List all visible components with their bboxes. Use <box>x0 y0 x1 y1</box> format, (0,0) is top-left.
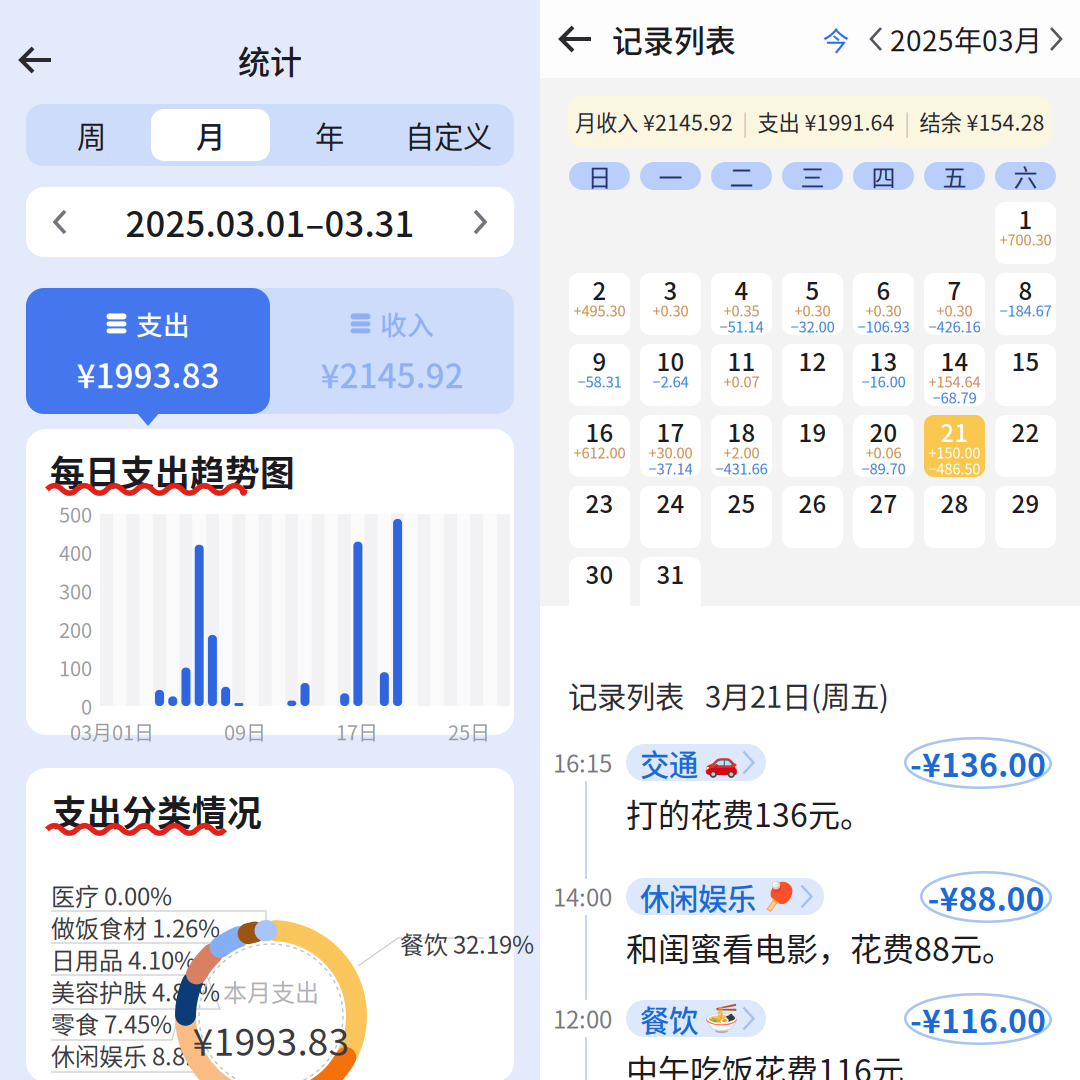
staticText: −184.67 <box>999 299 1051 321</box>
button[interactable]: 12 <box>782 344 843 406</box>
button[interactable]: 16 <box>569 415 630 477</box>
staticText: 300 <box>59 576 92 605</box>
button[interactable]: 收入 <box>270 288 514 414</box>
button[interactable]: 24 <box>640 486 701 548</box>
staticText: 28 <box>940 485 968 520</box>
button[interactable]: 6 <box>853 273 914 335</box>
staticText: 03月01日 <box>70 717 154 746</box>
button[interactable]: 23 <box>569 486 630 548</box>
staticText: −2.64 <box>652 370 688 392</box>
staticText: 记录列表 3月21日(周五) <box>568 674 889 716</box>
button[interactable]: 30 <box>569 557 630 619</box>
staticText: 30 <box>585 556 613 591</box>
staticText: +0.35 <box>723 299 759 321</box>
button[interactable]: 2 <box>569 273 630 335</box>
staticText: −68.79 <box>932 386 976 408</box>
staticText: −16.00 <box>861 370 905 392</box>
button[interactable]: 31 <box>640 557 701 619</box>
button[interactable]: 4 <box>711 273 772 335</box>
staticText: +0.07 <box>723 370 759 392</box>
staticText: +0.30 <box>936 299 972 321</box>
button[interactable]: 自定义 <box>389 109 508 161</box>
button[interactable]: 14:00 <box>540 877 1080 1000</box>
button[interactable]: 返回 <box>540 9 612 69</box>
staticText: 六 <box>1013 159 1037 193</box>
button[interactable]: 3 <box>640 273 701 335</box>
staticText: 记录列表 <box>612 17 736 61</box>
button[interactable]: 返回 <box>0 29 72 91</box>
staticText: -¥136.00 <box>910 740 1046 786</box>
button[interactable]: 28 <box>924 486 985 548</box>
button[interactable]: 1 <box>995 202 1056 264</box>
staticText: 19 <box>798 414 826 449</box>
button[interactable]: 18 <box>711 415 772 477</box>
staticText: 餐饮 32.19% <box>400 926 534 961</box>
button[interactable]: 26 <box>782 486 843 548</box>
button[interactable]: 六 <box>995 162 1056 190</box>
staticText: 18 <box>727 414 755 449</box>
staticText: 零食 7.45% <box>51 1006 172 1040</box>
staticText: 统计 <box>238 37 302 83</box>
button[interactable]: 13 <box>853 344 914 406</box>
staticText: 做饭食材 1.26% <box>51 910 220 944</box>
button[interactable]: 16:15 <box>540 743 1080 879</box>
button[interactable]: 年 <box>270 109 389 161</box>
button[interactable]: 15 <box>995 344 1056 406</box>
staticText: 三 <box>800 159 824 193</box>
button[interactable]: 20 <box>853 415 914 477</box>
button[interactable]: 17 <box>640 415 701 477</box>
button[interactable]: 上一月 <box>32 187 88 257</box>
staticText: 7 <box>947 272 961 307</box>
button[interactable]: 下一月 <box>1042 14 1070 64</box>
button[interactable]: 一 <box>640 162 701 190</box>
button[interactable]: 12:00 <box>540 999 1080 1080</box>
staticText: 2 <box>592 272 606 307</box>
button[interactable]: 10 <box>640 344 701 406</box>
staticText: +700.30 <box>999 228 1051 250</box>
staticText: 和闺蜜看电影，花费88元。 <box>626 924 1014 970</box>
button[interactable]: 五 <box>924 162 985 190</box>
staticText: 2025年03月 <box>890 19 1042 59</box>
staticText: 17 <box>656 414 684 449</box>
button[interactable]: 5 <box>782 273 843 335</box>
button[interactable]: 11 <box>711 344 772 406</box>
button[interactable]: 四 <box>853 162 914 190</box>
button[interactable]: 25 <box>711 486 772 548</box>
staticText: −51.14 <box>719 315 763 337</box>
button[interactable]: 19 <box>782 415 843 477</box>
button[interactable]: 14 <box>924 344 985 406</box>
button[interactable]: 日 <box>569 162 630 190</box>
staticText: 20 <box>869 414 897 449</box>
staticText: +154.64 <box>928 370 980 392</box>
button[interactable]: 上一月 <box>862 14 890 64</box>
button[interactable]: 支出 <box>26 288 270 414</box>
staticText: 12:00 <box>553 1001 612 1035</box>
button[interactable]: 周 <box>32 109 151 161</box>
staticText: +0.30 <box>794 299 830 321</box>
staticText: −32.00 <box>790 315 834 337</box>
staticText: −486.50 <box>928 457 980 479</box>
button[interactable]: 29 <box>995 486 1056 548</box>
button[interactable]: 21 <box>924 415 985 477</box>
button[interactable]: 27 <box>853 486 914 548</box>
button[interactable]: 8 <box>995 273 1056 335</box>
button[interactable]: 下一月 <box>452 187 508 257</box>
button[interactable]: 二 <box>711 162 772 190</box>
staticText: +30.00 <box>648 441 692 463</box>
staticText: 🍜 <box>704 1002 739 1034</box>
staticText: 周 <box>77 114 106 156</box>
button[interactable]: 22 <box>995 415 1056 477</box>
button[interactable]: 7 <box>924 273 985 335</box>
button[interactable]: 月 <box>151 109 270 161</box>
staticText: -¥116.00 <box>910 996 1046 1042</box>
button[interactable]: 三 <box>782 162 843 190</box>
staticText: +612.00 <box>573 441 625 463</box>
button[interactable]: 9 <box>569 344 630 406</box>
staticText: 9 <box>592 343 606 378</box>
staticText: 年 <box>315 114 344 156</box>
staticText: 500 <box>59 499 92 528</box>
staticText: +2.00 <box>723 441 759 463</box>
button[interactable]: 今 <box>816 14 856 64</box>
staticText: 交通 <box>640 742 698 784</box>
staticText: 1 <box>1018 201 1032 236</box>
